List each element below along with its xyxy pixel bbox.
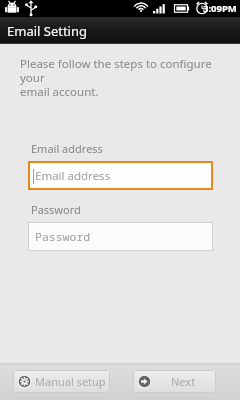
button[interactable]: Next bbox=[133, 370, 216, 393]
button[interactable]: Password bbox=[28, 222, 213, 251]
staticText: Email address bbox=[31, 141, 103, 156]
staticText: Manual setup bbox=[35, 374, 106, 389]
staticText: Email address bbox=[35, 168, 111, 184]
staticText: 3:09PM bbox=[203, 2, 237, 15]
staticText: Password bbox=[35, 229, 91, 245]
staticText: Next bbox=[171, 374, 196, 389]
button[interactable]: Email address bbox=[28, 161, 213, 190]
button[interactable]: Manual setup bbox=[13, 370, 110, 393]
staticText: Password bbox=[31, 202, 81, 217]
staticText: Please follow the steps to configure you… bbox=[20, 56, 228, 99]
staticText: Email Setting bbox=[7, 22, 88, 40]
